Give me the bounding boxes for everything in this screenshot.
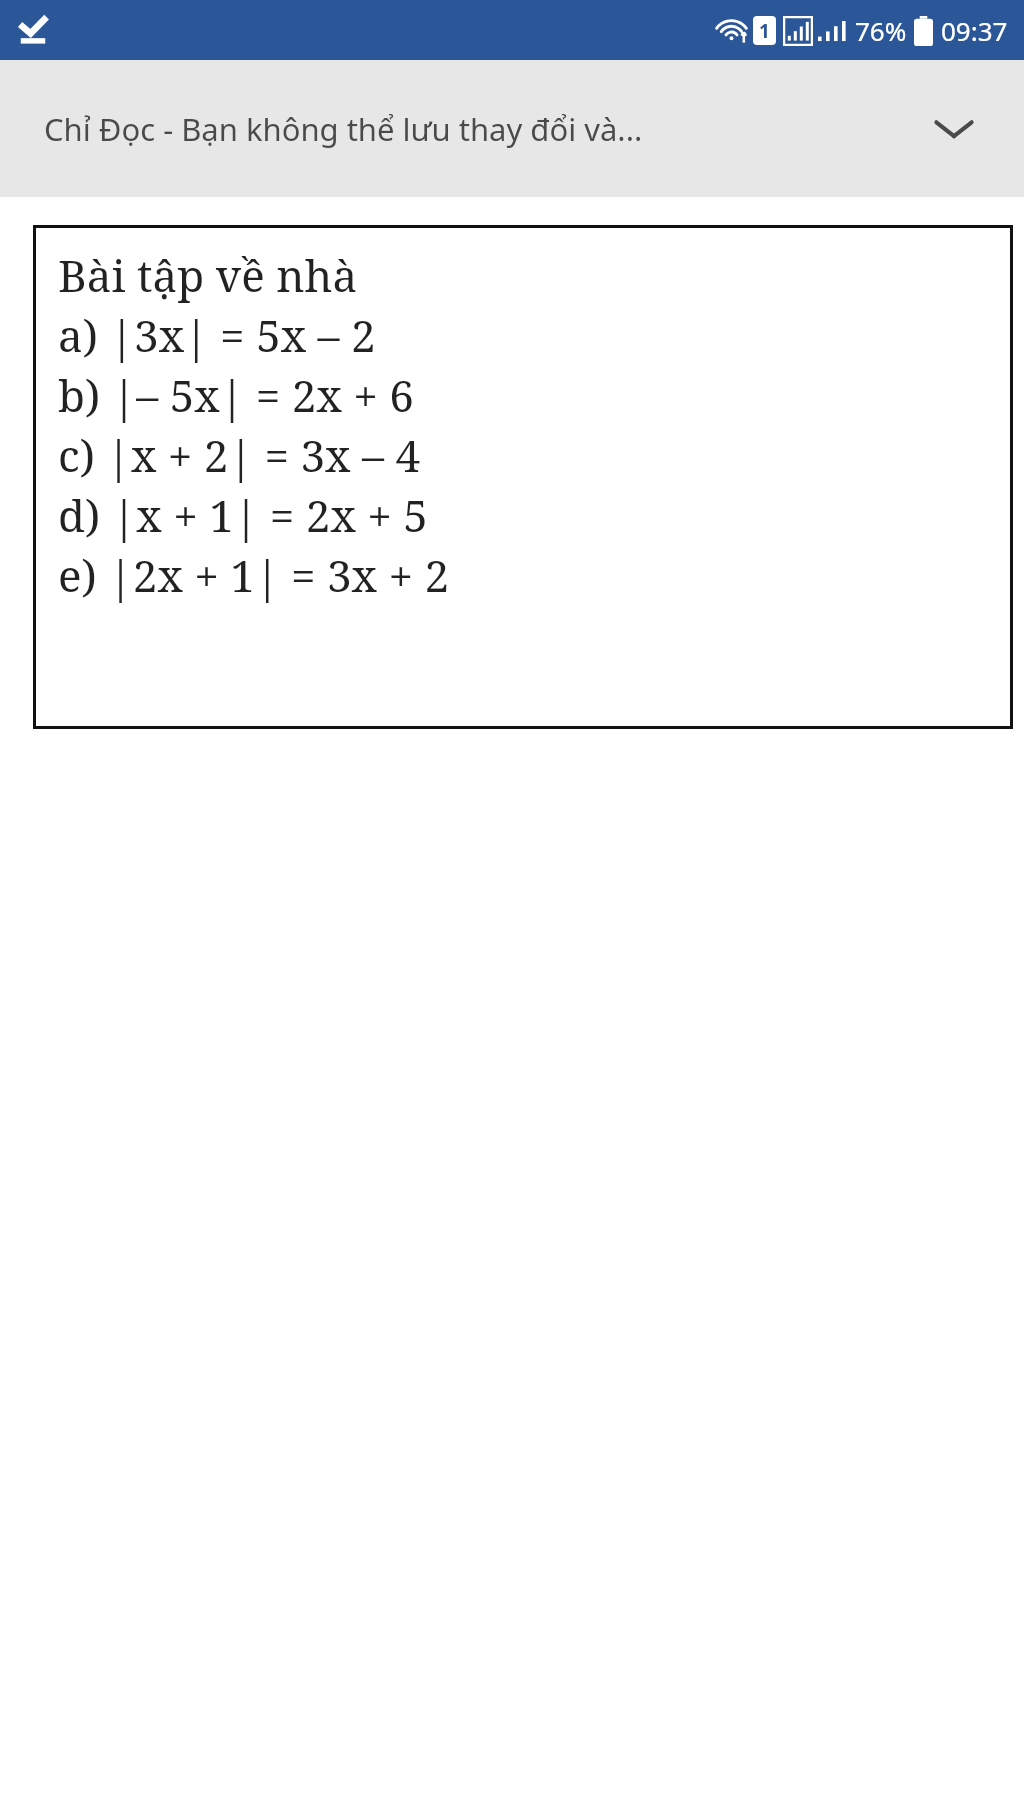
staticText: d) |x + 1| = 2x + 5 [58,485,428,545]
staticText: 76% [855,13,907,48]
button[interactable]: Chỉ Đọc - Bạn không thể lưu thay đổi và.… [0,60,1024,197]
staticText: c) |x + 2| = 3x – 4 [58,425,420,485]
button[interactable]: Bài tập về nhà [33,225,1013,729]
staticText: a) |3x| = 5x – 2 [58,305,376,365]
staticText: 09:37 [941,13,1008,48]
staticText: 1 [759,18,770,44]
button[interactable]: Expand read-only notice [918,93,990,165]
staticText: Chỉ Đọc - Bạn không thể lưu thay đổi và.… [44,108,643,150]
staticText: e) |2x + 1| = 3x + 2 [58,545,450,605]
staticText: Bài tập về nhà [58,245,358,305]
staticText: b) |– 5x| = 2x + 6 [58,365,414,425]
